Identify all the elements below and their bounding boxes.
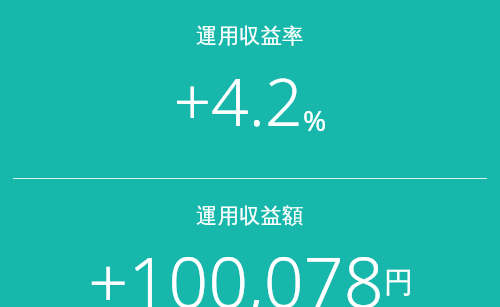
staticText: 運用収益率 bbox=[196, 23, 304, 49]
staticText: 運用収益額 bbox=[196, 203, 304, 229]
staticText: 円 bbox=[384, 264, 413, 301]
staticText: +100,078 bbox=[88, 233, 384, 307]
staticText: % bbox=[303, 101, 327, 139]
staticText: +4.2 bbox=[173, 55, 303, 145]
